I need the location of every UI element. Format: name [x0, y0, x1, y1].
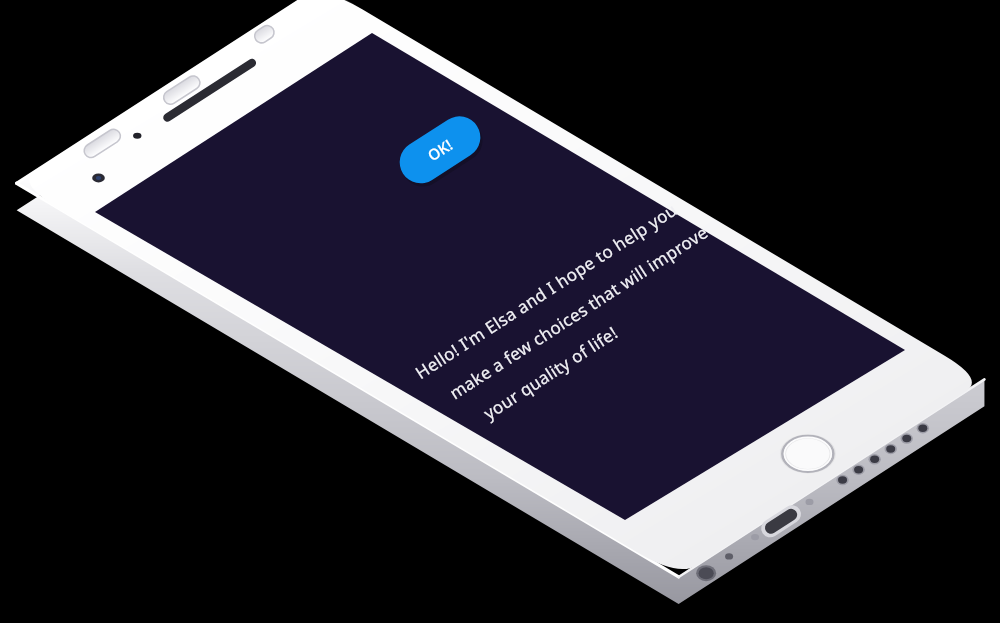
button[interactable]: iPhone mockup, Elsa welcome screen — [0, 0, 1000, 623]
